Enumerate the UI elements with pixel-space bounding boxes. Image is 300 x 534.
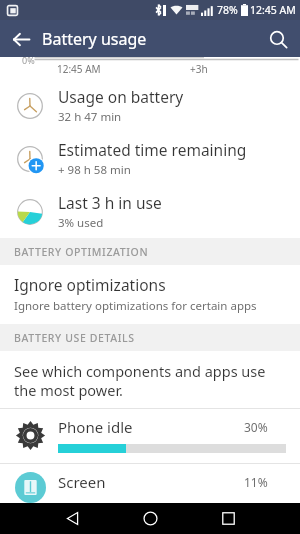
staticText: Usage on battery	[58, 86, 184, 107]
staticText: 3% used	[58, 215, 104, 231]
button[interactable]: Phone idle	[0, 409, 300, 463]
button[interactable]: Search	[262, 23, 294, 55]
staticText: 12:45 AM	[250, 3, 296, 17]
button[interactable]: Estimated time remaining	[0, 132, 300, 185]
staticText: +3h	[190, 62, 208, 76]
staticText: 32 h 47 min	[58, 109, 122, 125]
staticText: See which components and apps use the mo…	[14, 361, 282, 400]
staticText: BATTERY OPTIMIZATION	[14, 245, 149, 259]
button[interactable]: Last 3 h in use	[0, 185, 300, 238]
staticText: Ignore battery optimizations for certain…	[14, 298, 257, 314]
staticText: 12:45 AM	[57, 62, 101, 76]
button[interactable]: Screen	[0, 464, 300, 503]
staticText: Ignore optimizations	[14, 274, 166, 295]
staticText: Estimated time remaining	[58, 139, 247, 160]
staticText: 0%	[22, 54, 35, 66]
button[interactable]: Recent apps	[211, 503, 245, 534]
staticText: Battery usage	[42, 28, 147, 50]
staticText: + 98 h 58 min	[58, 162, 131, 178]
button[interactable]: Back	[5, 23, 37, 55]
button[interactable]: Back	[55, 503, 89, 534]
staticText: BATTERY USE DETAILS	[14, 331, 135, 345]
staticText: 78%	[217, 3, 238, 17]
staticText: Phone idle	[58, 417, 133, 437]
button[interactable]: Home	[133, 503, 167, 534]
staticText: 30%	[244, 419, 268, 435]
staticText: Last 3 h in use	[58, 192, 162, 213]
button[interactable]: Usage on battery	[0, 79, 300, 132]
staticText: 11%	[244, 474, 268, 490]
button[interactable]: Ignore optimizations	[0, 265, 300, 324]
staticText: Screen	[58, 472, 106, 492]
